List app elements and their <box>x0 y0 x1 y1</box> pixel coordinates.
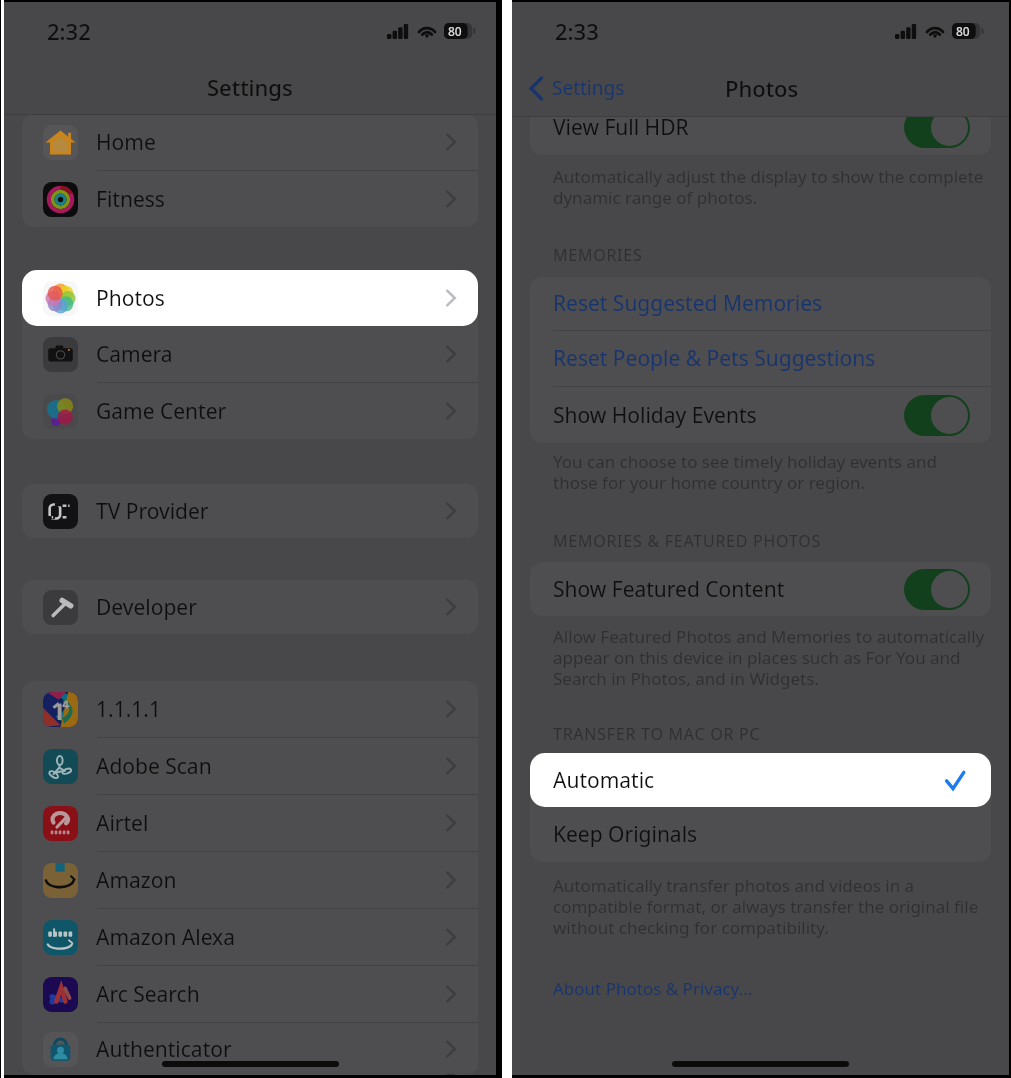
staticText: 2:32 <box>47 16 91 46</box>
staticText: Game Center <box>96 397 227 426</box>
button[interactable]: Settings <box>530 60 625 116</box>
button[interactable]: Game Center <box>22 383 478 439</box>
staticText: Authenticator <box>96 1035 232 1064</box>
staticText: Keep Originals <box>553 820 698 849</box>
button[interactable]: Toggle <box>904 569 970 610</box>
staticText: View Full HDR <box>553 113 689 142</box>
staticText: MEMORIES <box>553 244 643 266</box>
staticText: Arc Search <box>96 980 200 1009</box>
staticText: Reset People & Pets Suggestions <box>553 344 876 373</box>
button[interactable]: Arc Search <box>22 966 478 1022</box>
button[interactable]: Camera <box>22 326 478 382</box>
staticText: 1.1.1.1 <box>96 695 161 724</box>
staticText: Settings <box>552 75 625 101</box>
button[interactable]: Fitness <box>22 171 478 227</box>
staticText: Show Holiday Events <box>553 401 757 430</box>
button[interactable]: Authenticator <box>22 1023 478 1075</box>
staticText: 2:33 <box>555 16 599 46</box>
staticText: TV Provider <box>96 497 209 526</box>
staticText: Settings <box>207 72 293 102</box>
button[interactable]: Amazon Alexa <box>22 909 478 965</box>
button[interactable]: Developer <box>22 580 478 634</box>
staticText: Automatically transfer photos and videos… <box>553 874 979 939</box>
staticText: Home <box>96 128 156 157</box>
staticText: Camera <box>96 340 173 369</box>
button[interactable]: Reset People & Pets Suggestions <box>530 331 991 386</box>
staticText: Photos <box>725 73 799 103</box>
staticText: Allow Featured Photos and Memories to au… <box>553 625 985 690</box>
button[interactable]: View Full HDR <box>530 99 991 155</box>
staticText: Adobe Scan <box>96 752 212 781</box>
button[interactable]: Reset Suggested Memories <box>530 277 991 330</box>
staticText: Fitness <box>96 185 165 214</box>
button[interactable]: Keep Originals <box>530 807 991 862</box>
button[interactable]: Toggle <box>904 395 970 436</box>
staticText: MEMORIES & FEATURED PHOTOS <box>553 530 821 552</box>
button[interactable]: Amazon <box>22 852 478 908</box>
button[interactable]: Adobe Scan <box>22 738 478 794</box>
staticText: Airtel <box>96 809 149 838</box>
staticText: Amazon Alexa <box>96 923 235 952</box>
staticText: Developer <box>96 593 197 622</box>
staticText: Reset Suggested Memories <box>553 289 823 318</box>
button[interactable]: Toggle <box>904 107 970 148</box>
staticText: 80 <box>448 23 462 39</box>
button[interactable]: Airtel <box>22 795 478 851</box>
staticText: TRANSFER TO MAC OR PC <box>553 723 761 745</box>
button[interactable]: TV Provider <box>22 484 478 538</box>
button[interactable]: Home <box>22 114 478 170</box>
button[interactable]: 1.1.1.1 <box>22 681 478 737</box>
button[interactable]: Show Holiday Events <box>530 387 991 443</box>
button[interactable]: Show Featured Content <box>530 562 991 616</box>
button[interactable]: About Photos & Privacy... <box>553 977 753 1000</box>
staticText: About Photos & Privacy... <box>553 977 753 1000</box>
staticText: 80 <box>956 23 970 39</box>
button[interactable]: Automatic <box>530 753 991 807</box>
button[interactable]: Photos <box>22 270 478 326</box>
staticText: Show Featured Content <box>553 575 785 604</box>
staticText: Automatic <box>553 766 655 795</box>
staticText: Amazon <box>96 866 177 895</box>
staticText: Automatically adjust the display to show… <box>553 165 984 209</box>
staticText: You can choose to see timely holiday eve… <box>553 450 937 494</box>
staticText: Photos <box>96 284 165 313</box>
